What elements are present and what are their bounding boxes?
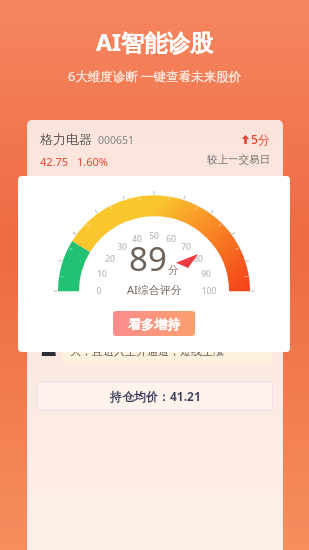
staticText: 10 (93, 268, 111, 280)
staticText: 70 (177, 241, 195, 253)
staticText: 60 (162, 233, 180, 245)
staticText: 格力电器 (40, 131, 92, 147)
staticText: 未来股价 (125, 235, 185, 254)
button[interactable]: 中线 (155, 275, 273, 301)
staticText: 看多增持 (128, 316, 180, 332)
button[interactable]: 格力电器 (40, 131, 270, 169)
staticText: 1.60% (77, 154, 108, 169)
staticText: 000651 (98, 133, 135, 147)
staticText: 100 (200, 285, 218, 297)
other: AI 顾问 (36, 320, 62, 356)
staticText: 0 (90, 285, 108, 297)
staticText: 中线 (203, 281, 226, 295)
staticText: 40 (128, 233, 146, 245)
staticText: 短线 (85, 281, 108, 295)
staticText: 42.75 (40, 154, 69, 169)
staticText: 6大维度诊断 一键查看未来股价 (68, 68, 241, 85)
staticText: 持仓均价：41.21 (110, 388, 201, 404)
staticText: 89 (129, 236, 167, 281)
staticText: 20 (101, 253, 119, 265)
staticText: 30 (113, 241, 131, 253)
staticText: 80 (189, 253, 207, 265)
staticText: 50 (145, 230, 163, 242)
staticText: 较上一交易日 (207, 153, 270, 166)
staticText: 分 (168, 263, 179, 277)
button[interactable]: 看多增持 (113, 311, 195, 336)
staticText: AI智能诊股 (96, 26, 213, 57)
staticText: 5分 (251, 131, 270, 147)
staticText: AI综合评分 (127, 282, 182, 297)
staticText: 股价均处于均价上方运行，上升空间较大，且进入上升通道，短线上涨 (70, 327, 265, 358)
staticText: 90 (197, 268, 215, 280)
button[interactable]: 短线 (37, 275, 155, 301)
